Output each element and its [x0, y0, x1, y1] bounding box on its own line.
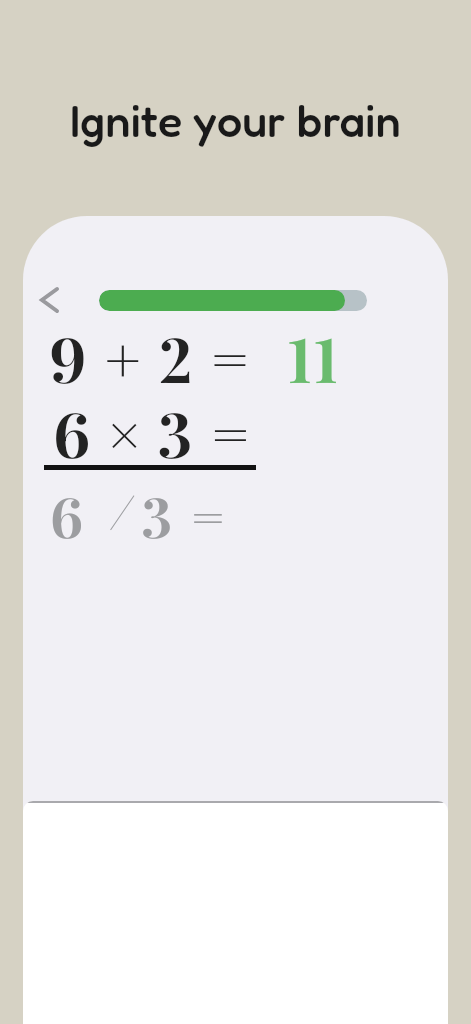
- staticText: 6 ⁄ 3 =: [50, 478, 229, 551]
- staticText: 9 + 2 = 11: [49, 316, 340, 399]
- button[interactable]: [31, 280, 67, 320]
- staticText: Ignite your brain: [70, 93, 401, 147]
- staticText: 6 × 3 =: [53, 391, 253, 474]
